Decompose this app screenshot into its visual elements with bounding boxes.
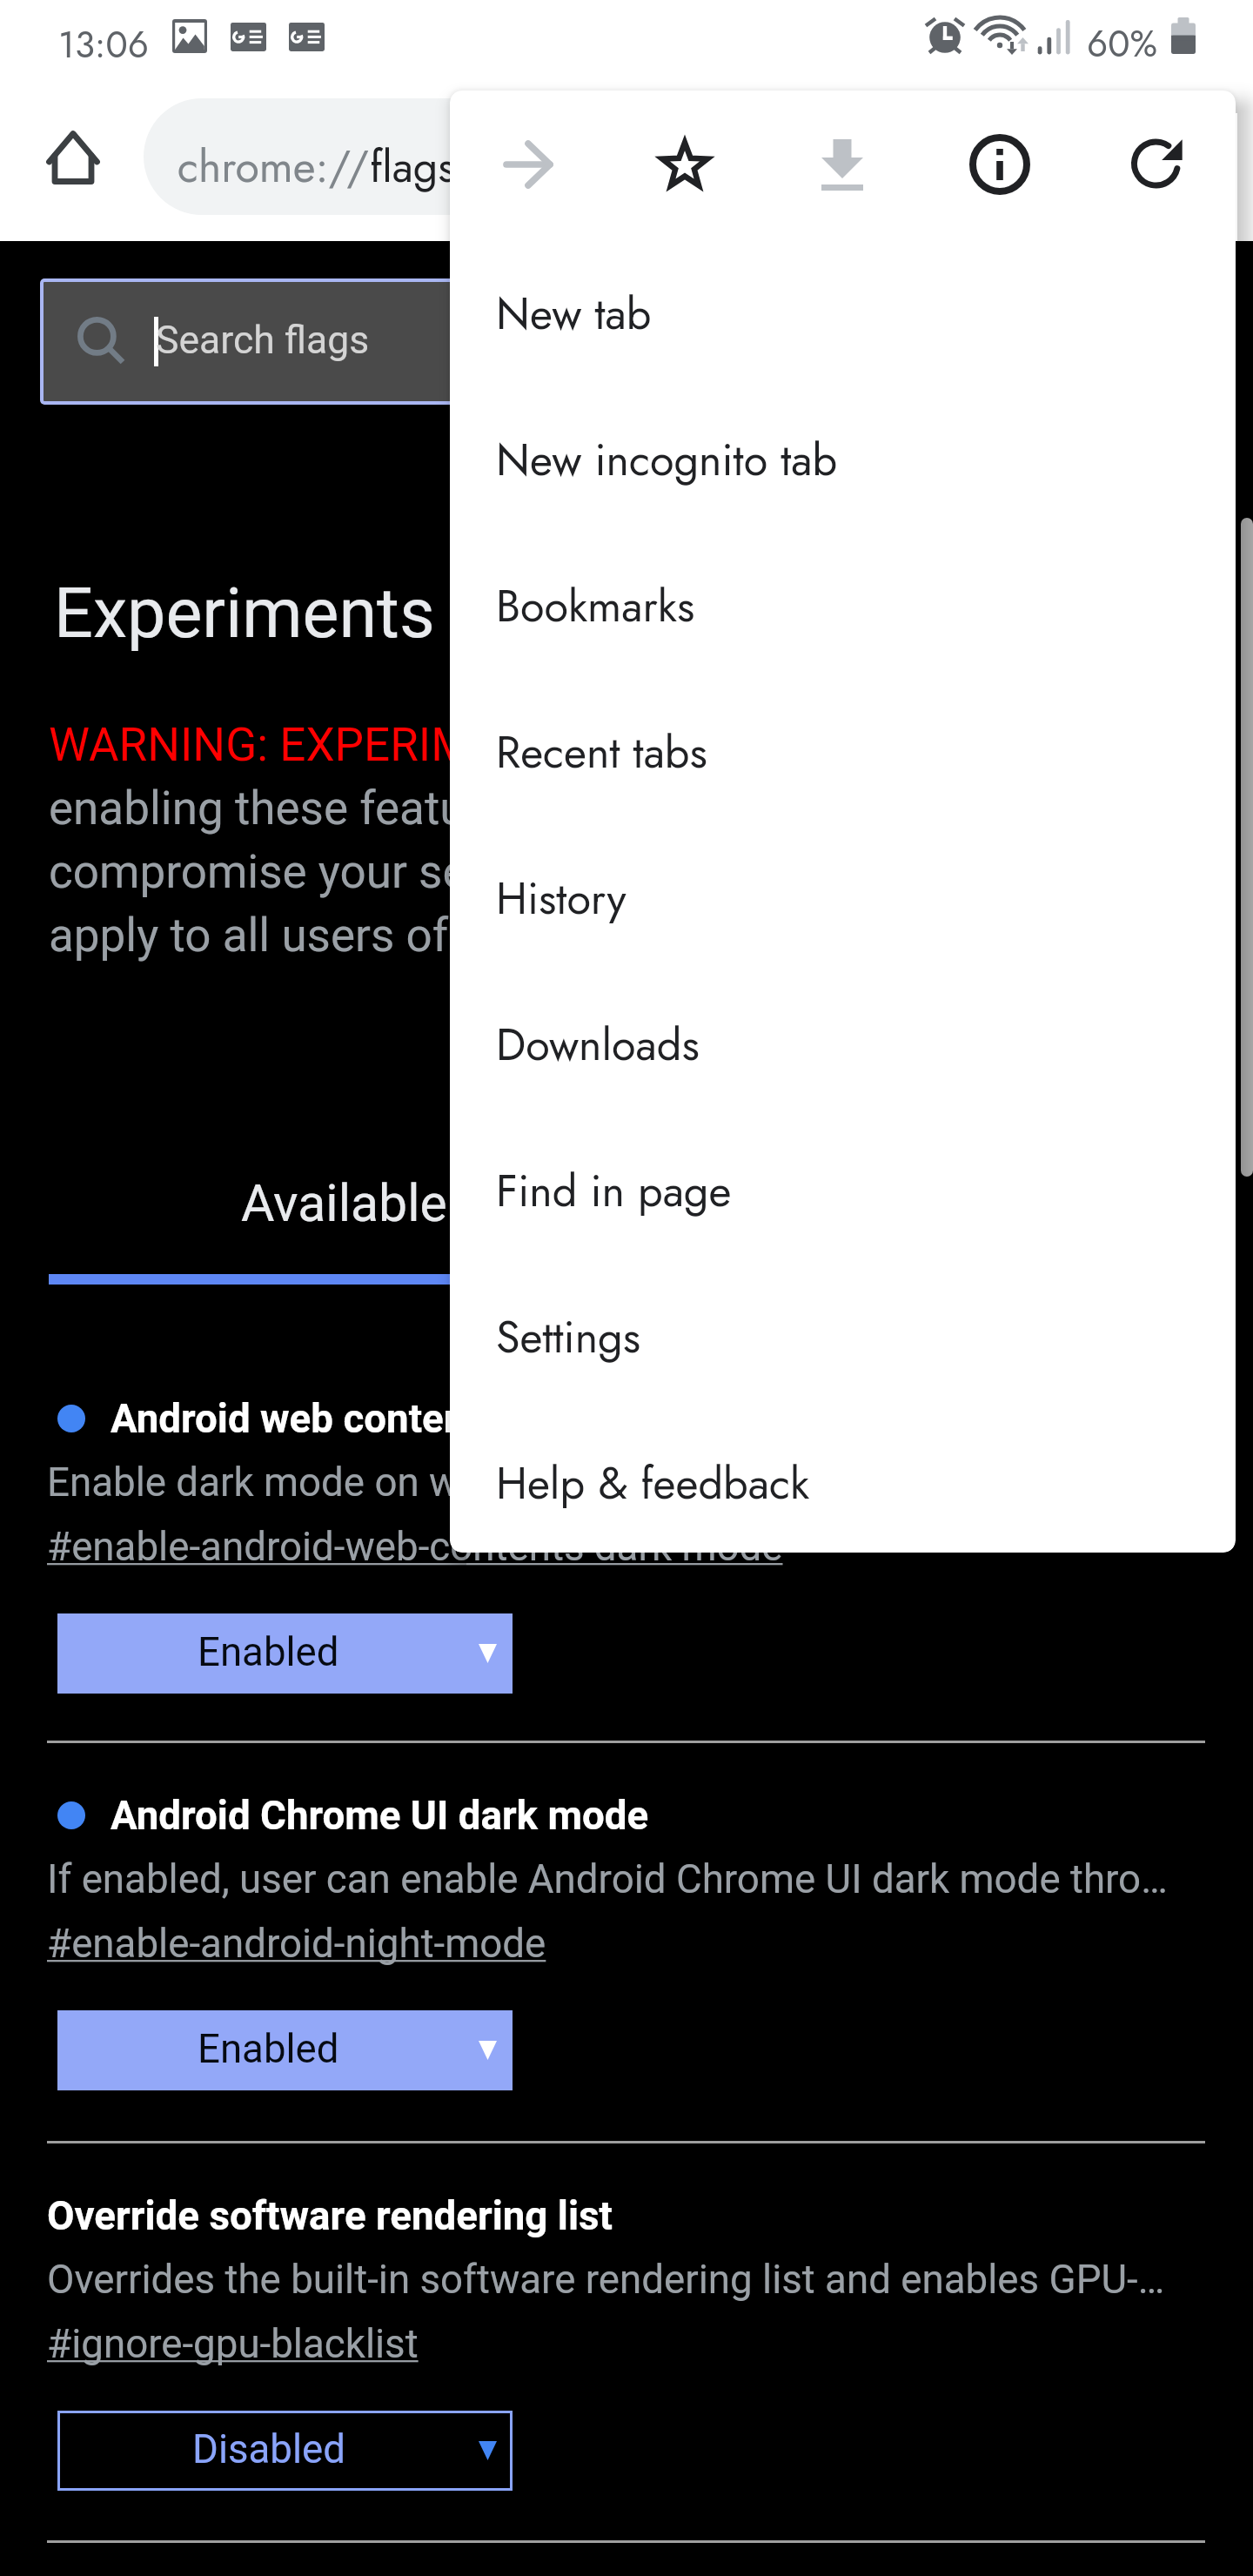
staticText: Android web contents dark mode [111,1396,700,1443]
staticText: History [496,867,626,930]
staticText: Enabled [198,2026,339,2072]
staticText: apply to all users of this browser. [49,909,722,963]
staticText: 60% [1087,17,1157,70]
button[interactable]: Enabled [57,1613,513,1694]
staticText: #ignore-gpu-blacklist [47,2321,419,2368]
staticText: Android Chrome UI dark mode [111,1793,649,1840]
button[interactable]: Bookmarks [450,533,1236,679]
button[interactable]: Reload [1078,91,1236,238]
button[interactable]: Download [763,91,921,238]
button[interactable]: Disabled [57,2411,513,2491]
staticText: enabling these features, you could lose … [49,782,1178,835]
button[interactable]: Help & feedback [450,1410,1236,1553]
staticText: New tab [496,282,652,345]
staticText: Enable dark mode on web contents [47,1459,667,1506]
staticText: Available [241,1173,447,1233]
staticText: chrome:// [178,135,370,198]
button[interactable]: New incognito tab [450,386,1236,533]
staticText: #enable-android-web-contents dark mode [47,1524,783,1571]
button[interactable]: Page info [921,91,1078,238]
staticText: 13:06 [58,18,149,71]
button[interactable]: Bookmark [606,91,763,238]
staticText: Downloads [496,1013,700,1077]
staticText: Experiments [54,574,435,654]
staticText: compromise your security or privacy. Ena… [49,845,1157,899]
staticText: Bookmarks [496,574,695,638]
staticText: Disabled [192,2426,345,2472]
button[interactable]: Recent tabs [450,679,1236,825]
button[interactable]: chrome:// [144,98,1223,215]
button[interactable]: Downloads [450,971,1236,1117]
staticText: Find in page [496,1159,732,1223]
staticText: Help & feedback [496,1452,810,1515]
button[interactable]: Find in page [450,1117,1236,1264]
button[interactable]: History [450,825,1236,971]
button[interactable]: Settings [450,1264,1236,1410]
staticText: Overrides the built-in software renderin… [47,2257,1165,2304]
staticText: #enable-android-night-mode [47,1921,546,1968]
button[interactable]: New tab [450,240,1236,386]
staticText: New incognito tab [496,428,838,492]
staticText: flags [370,135,456,198]
staticText: Override software rendering list [47,2193,613,2240]
button[interactable]: Search flags [40,278,1213,405]
button[interactable]: Forward [450,91,606,238]
staticText: Recent tabs [496,721,707,784]
staticText: Search flags [156,318,370,363]
button[interactable]: Home [23,108,123,207]
staticText: Settings [496,1305,641,1369]
button[interactable]: Enabled [57,2010,513,2090]
staticText: Enabled [198,1629,339,1675]
staticText: If enabled, user can enable Android Chro… [47,1856,1168,1903]
staticText: WARNING: EXPERIMENTAL FEATURES AHEAD! By [49,718,1075,772]
